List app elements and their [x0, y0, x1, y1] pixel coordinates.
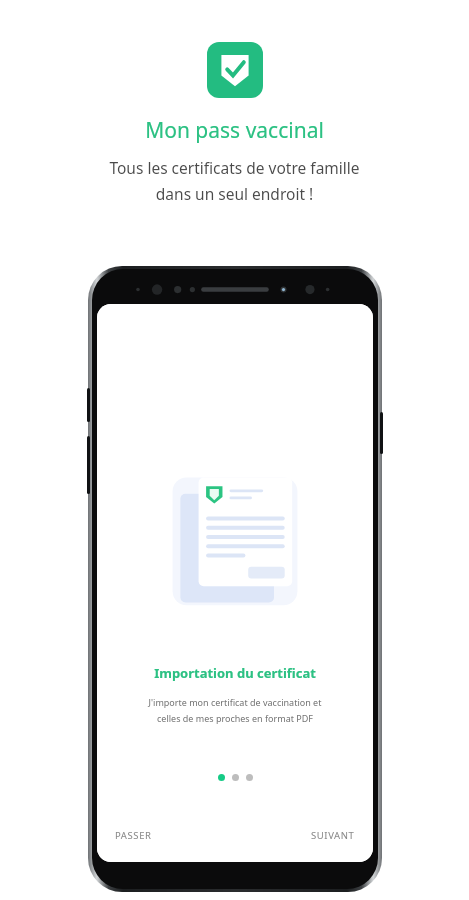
- staticText: J'importe mon certificat de vaccination …: [97, 696, 373, 708]
- staticText: Importation du certificat: [97, 664, 373, 682]
- button[interactable]: [218, 774, 225, 781]
- staticText: celles de mes proches en format PDF: [97, 712, 373, 724]
- staticText: SUIVANT: [311, 829, 355, 842]
- button[interactable]: [246, 774, 253, 781]
- staticText: Tous les certificats de votre famille: [0, 157, 469, 178]
- staticText: Mon pass vaccinal: [0, 116, 469, 145]
- button[interactable]: SUIVANT: [293, 821, 373, 850]
- button[interactable]: [232, 774, 239, 781]
- other: Mon pass vaccinal logo: [207, 42, 263, 98]
- staticText: dans un seul endroit !: [0, 183, 469, 204]
- staticText: PASSER: [115, 829, 152, 842]
- button[interactable]: PASSER: [97, 821, 170, 850]
